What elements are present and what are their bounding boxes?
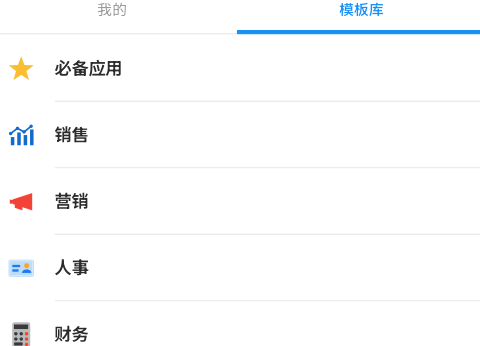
staticText: 营销 [54,188,88,213]
button[interactable]: 财务 [0,301,480,346]
staticText: 我的 [97,0,127,19]
button[interactable]: 营销 [0,168,480,235]
button[interactable]: 销售 [0,102,480,168]
staticText: 模板库 [339,0,384,19]
button[interactable]: 人事 [0,235,480,301]
staticText: 必备应用 [54,55,122,80]
button[interactable]: 模板库 [237,0,480,35]
button[interactable]: 必备应用 [0,35,480,102]
button[interactable]: 我的 [0,0,237,35]
staticText: 财务 [54,321,88,346]
staticText: 人事 [54,254,88,279]
staticText: 销售 [54,121,88,146]
